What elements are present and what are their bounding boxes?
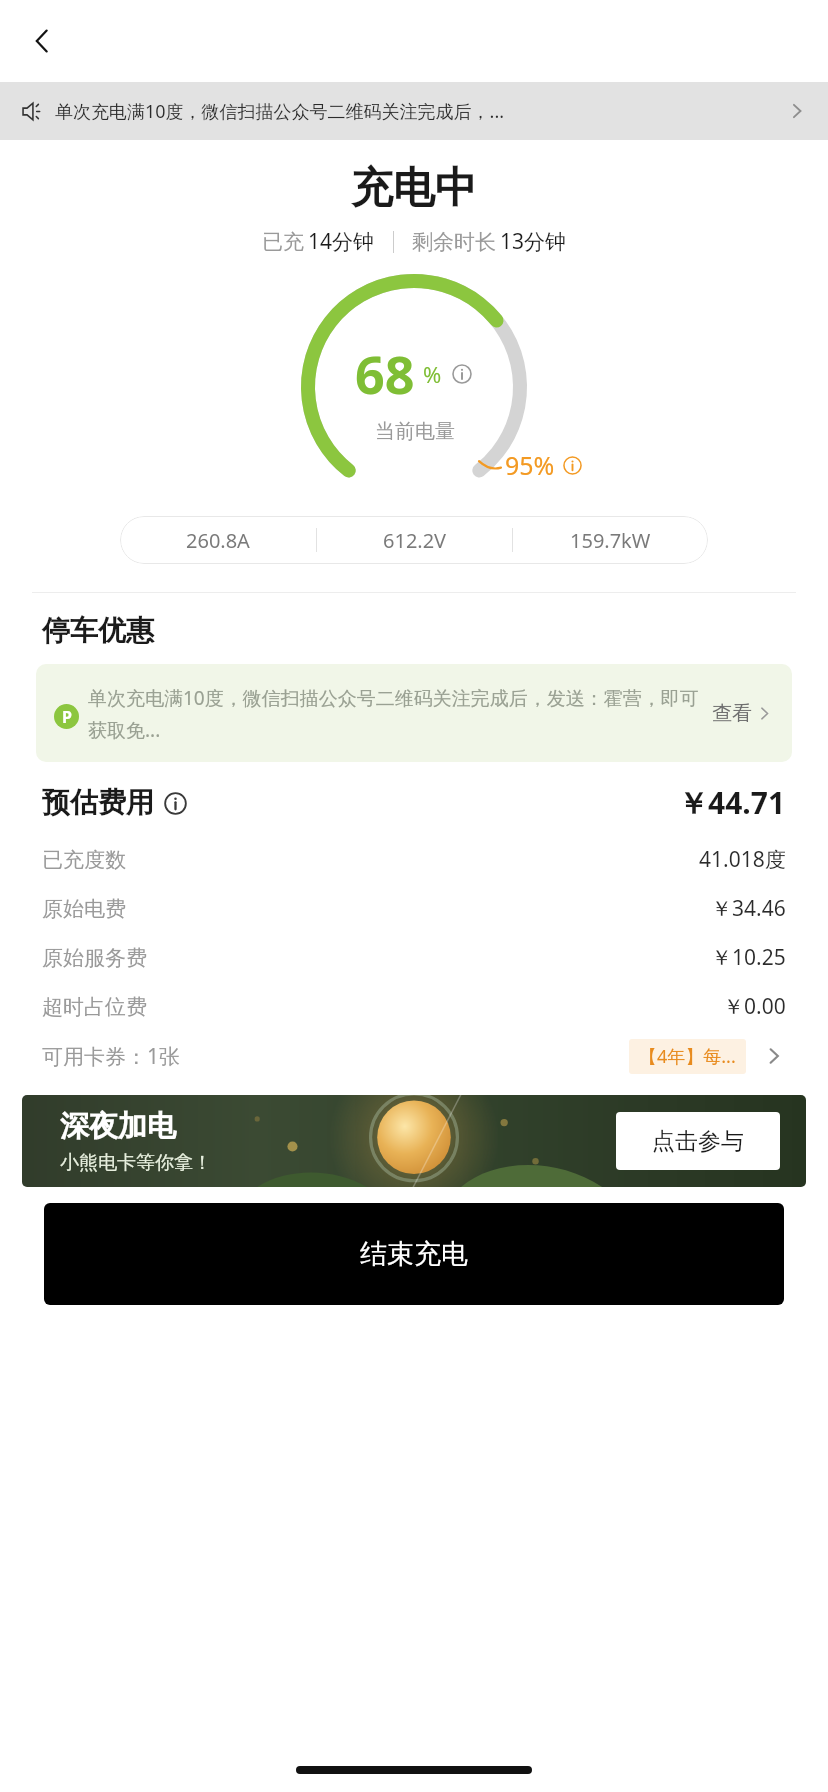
staticText: 可用卡券：1张 [42, 1042, 181, 1071]
button[interactable]: 预估费用说明 [162, 790, 188, 816]
staticText: 小熊电卡等你拿！ [60, 1151, 212, 1175]
staticText: 查看 [712, 701, 752, 726]
staticText: ￥10.25 [711, 943, 786, 972]
staticText: 612.2V [383, 527, 447, 554]
staticText: 深夜加电 [60, 1108, 176, 1145]
staticText: 已充度数 [42, 847, 126, 873]
staticText: 原始服务费 [42, 945, 147, 971]
staticText: 停车优惠 [42, 613, 154, 648]
staticText: 剩余时长 [412, 229, 496, 255]
staticText: 单次充电满10度，微信扫描公众号二维码关注完成后，发送：霍营，即可获取免... [88, 685, 700, 742]
staticText: 【4年】每... [639, 1044, 736, 1069]
staticText: 14分钟 [308, 227, 375, 256]
staticText: 预估费用 [42, 785, 154, 820]
button[interactable]: P [36, 664, 792, 762]
staticText: 当前电量 [375, 419, 455, 444]
button[interactable]: 95% [477, 446, 584, 484]
staticText: 260.8A [186, 527, 250, 554]
staticText: 13分钟 [500, 227, 567, 256]
button[interactable]: 可用卡券：1张 [42, 1031, 786, 1081]
button[interactable]: 返回 [16, 15, 68, 67]
staticText: 充电中 [0, 162, 828, 215]
button[interactable]: 当前电量说明 [450, 362, 474, 386]
button[interactable]: 点击参与 [616, 1112, 780, 1170]
staticText: 单次充电满10度，微信扫描公众号二维码关注完成后，... [55, 99, 778, 124]
staticText: 159.7kW [570, 527, 651, 554]
button[interactable]: 深夜加电 活动 [22, 1095, 806, 1187]
staticText: % [423, 359, 442, 389]
staticText: ￥44.71 [678, 782, 786, 823]
button[interactable]: 结束充电 [44, 1203, 784, 1305]
staticText: 超时占位费 [42, 994, 147, 1020]
button[interactable]: 260.8A [120, 516, 708, 564]
button[interactable]: 单次充电满10度，微信扫描公众号二维码关注完成后，... [0, 82, 828, 140]
staticText: 41.018度 [699, 845, 786, 874]
staticText: 结束充电 [360, 1237, 468, 1271]
staticText: 已充 [262, 229, 304, 255]
staticText: ￥34.46 [711, 894, 786, 923]
staticText: P [62, 706, 72, 728]
staticText: 原始电费 [42, 896, 126, 922]
staticText: ￥0.00 [723, 992, 786, 1021]
staticText: 95% [505, 448, 555, 482]
staticText: 点击参与 [652, 1127, 744, 1156]
staticText: 68 [355, 338, 415, 409]
